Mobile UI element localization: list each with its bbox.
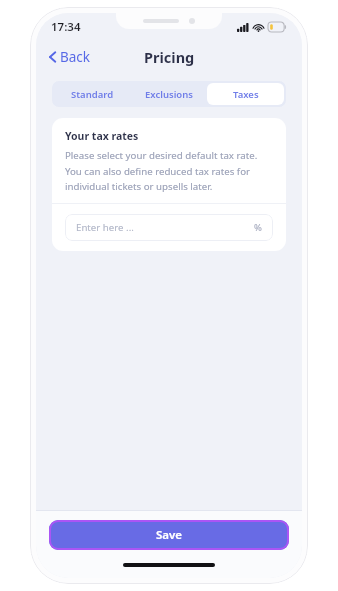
button[interactable]: Back [43,44,97,70]
button[interactable]: Save [49,520,289,550]
button[interactable]: Taxes [207,83,284,105]
staticText: Enter here ... [76,221,134,234]
staticText: Please select your desired default tax r… [65,149,273,193]
staticText: Taxes [233,88,259,101]
staticText: % [254,221,262,234]
staticText: 17:34 [51,19,81,35]
button[interactable]: Standard [54,83,130,105]
button[interactable]: Exclusions [130,83,207,105]
staticText: Pricing [144,47,195,67]
staticText: Exclusions [145,88,193,101]
button[interactable]: Enter here ... [65,214,273,241]
staticText: Your tax rates [65,129,139,143]
staticText: Back [60,48,91,66]
staticText: Standard [71,88,114,101]
staticText: Save [156,527,183,543]
